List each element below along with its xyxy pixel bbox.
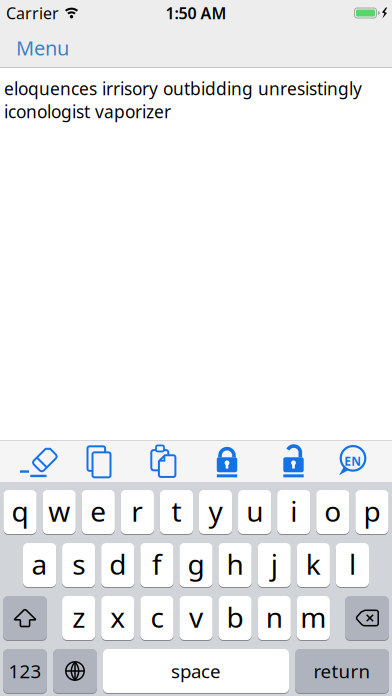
staticText: Menu xyxy=(16,34,69,61)
button[interactable]: v xyxy=(179,595,213,640)
staticText: o xyxy=(324,492,341,530)
button[interactable]: u xyxy=(238,489,271,534)
button[interactable]: space xyxy=(103,648,289,693)
staticText: e xyxy=(90,492,106,530)
button[interactable]: e xyxy=(82,489,115,534)
staticText: EN xyxy=(344,453,361,469)
staticText: c xyxy=(150,598,163,636)
staticText: 1:50 AM xyxy=(165,2,226,24)
button[interactable]: Erase xyxy=(7,441,72,482)
button[interactable]: x xyxy=(101,595,134,640)
staticText: u xyxy=(246,492,263,530)
button[interactable]: m xyxy=(297,595,330,640)
button[interactable]: l xyxy=(336,542,369,587)
button[interactable]: c xyxy=(140,595,173,640)
staticText: y xyxy=(209,492,223,530)
staticText: m xyxy=(300,598,326,636)
button[interactable]: Delete xyxy=(345,595,389,640)
button[interactable]: f xyxy=(140,542,173,587)
button[interactable]: g xyxy=(179,542,213,587)
button[interactable]: s xyxy=(62,542,95,587)
button[interactable]: z xyxy=(62,595,95,640)
button[interactable]: t xyxy=(160,489,193,534)
button[interactable]: k xyxy=(297,542,330,587)
staticText: r xyxy=(131,492,143,530)
staticText: t xyxy=(171,492,181,530)
button[interactable]: Unlock xyxy=(258,441,320,482)
staticText: a xyxy=(32,545,48,583)
button[interactable]: a xyxy=(23,542,56,587)
button[interactable]: Language xyxy=(320,441,385,482)
staticText: i xyxy=(290,492,297,530)
button[interactable]: i xyxy=(277,489,310,534)
button[interactable]: r xyxy=(121,489,154,534)
button[interactable]: d xyxy=(101,542,134,587)
button[interactable]: b xyxy=(218,595,252,640)
staticText: w xyxy=(48,492,70,530)
staticText: return xyxy=(313,659,370,683)
staticText: eloquences irrisory outbidding unresisti… xyxy=(4,77,362,123)
staticText: l xyxy=(349,545,356,583)
button[interactable]: Lock xyxy=(196,441,258,482)
button[interactable]: h xyxy=(218,542,252,587)
staticText: k xyxy=(306,545,321,583)
button[interactable]: Menu xyxy=(16,32,69,59)
staticText: b xyxy=(227,598,244,636)
staticText: f xyxy=(152,545,162,583)
staticText: h xyxy=(227,545,244,583)
button[interactable]: w xyxy=(43,489,76,534)
staticText: d xyxy=(109,545,126,583)
staticText: g xyxy=(187,545,204,583)
button[interactable]: Copy xyxy=(72,441,134,482)
staticText: 123 xyxy=(8,659,41,683)
button[interactable]: j xyxy=(258,542,291,587)
button[interactable]: Shift xyxy=(3,595,47,640)
button[interactable]: Next keyboard xyxy=(53,648,97,693)
staticText: s xyxy=(72,545,85,583)
button[interactable]: o xyxy=(316,489,349,534)
staticText: p xyxy=(363,492,380,530)
staticText: Carrier xyxy=(6,2,59,24)
staticText: q xyxy=(12,492,29,530)
button[interactable]: 123 xyxy=(3,648,47,693)
button[interactable]: Paste xyxy=(134,441,196,482)
staticText: space xyxy=(171,659,221,683)
staticText: v xyxy=(189,598,203,636)
staticText: j xyxy=(271,545,278,583)
button[interactable]: q xyxy=(3,489,37,534)
button[interactable]: return xyxy=(295,648,389,693)
staticText: x xyxy=(110,598,125,636)
button[interactable]: p xyxy=(355,489,389,534)
staticText: z xyxy=(72,598,85,636)
button[interactable]: n xyxy=(258,595,291,640)
button[interactable]: y xyxy=(199,489,232,534)
staticText: n xyxy=(266,598,283,636)
